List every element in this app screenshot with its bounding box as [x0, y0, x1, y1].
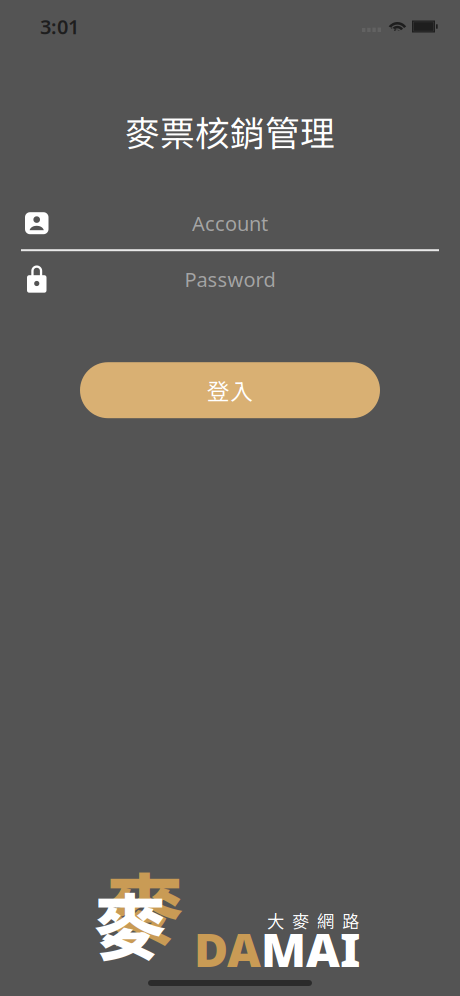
- button[interactable]: Account: [0, 204, 460, 242]
- staticText: 麥票核銷管理: [125, 106, 335, 156]
- staticText: MAI: [261, 918, 361, 980]
- staticText: 麥: [106, 849, 183, 961]
- button[interactable]: Password: [0, 260, 460, 298]
- staticText: 麥: [94, 871, 166, 975]
- staticText: Password: [184, 266, 275, 292]
- staticText: 登入: [207, 374, 253, 407]
- staticText: 3:01: [40, 13, 79, 40]
- staticText: 大 麥 網 路: [267, 908, 359, 933]
- staticText: DA: [194, 918, 261, 980]
- button[interactable]: 登入: [80, 362, 380, 418]
- staticText: Account: [192, 210, 268, 236]
